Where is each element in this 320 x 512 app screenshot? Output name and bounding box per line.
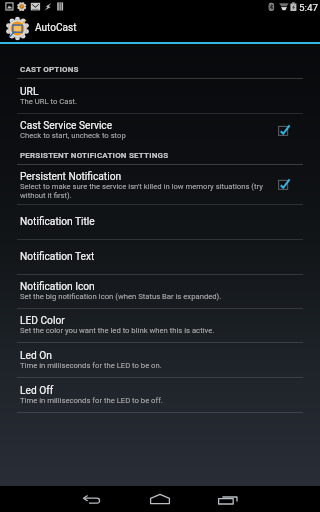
staticText: The URL to Cast.	[20, 97, 77, 106]
button[interactable]: Back	[75, 486, 109, 512]
button[interactable]: Notification Text	[0, 240, 320, 274]
staticText: Notification Text	[20, 251, 95, 263]
staticText: Set the big notification Icon (when Stat…	[20, 292, 222, 301]
staticText: Time in milliseconds for the LED to be o…	[20, 361, 162, 370]
button[interactable]: Notification Title	[0, 205, 320, 239]
button[interactable]: Home	[143, 486, 177, 512]
button[interactable]: Cast Service Service	[0, 114, 320, 147]
staticText: Time in milliseconds for the LED to be o…	[20, 396, 163, 405]
staticText: Check to start, uncheck to stop	[20, 131, 126, 140]
staticText: Select to make sure the service isn't ki…	[20, 182, 268, 200]
staticText: LED Color	[20, 315, 65, 327]
button[interactable]: Toggle	[278, 124, 292, 138]
staticText: Notification Title	[20, 216, 95, 228]
staticText: Persistent Notification	[20, 171, 122, 183]
button[interactable]: LED Color	[0, 309, 320, 342]
staticText: URL	[20, 86, 39, 98]
staticText: Set the color you want the led to blink …	[20, 326, 215, 335]
button[interactable]: AutoCast	[0, 14, 320, 42]
button[interactable]: Toggle	[278, 178, 292, 192]
button[interactable]: Led On	[0, 343, 320, 377]
button[interactable]: Notification Icon	[0, 275, 320, 308]
staticText: Notification Icon	[20, 281, 95, 293]
staticText: AutoCast	[35, 22, 77, 34]
staticText: CAST OPTIONS	[20, 65, 79, 74]
staticText: 5:47	[299, 2, 318, 13]
staticText: Cast Service Service	[20, 120, 113, 132]
staticText: Led On	[20, 350, 52, 362]
staticText: Led Off	[20, 385, 54, 397]
button[interactable]: URL	[0, 79, 320, 113]
button[interactable]: Recent apps	[211, 486, 245, 512]
button[interactable]: Led Off	[0, 378, 320, 412]
button[interactable]: Persistent Notification	[0, 165, 320, 204]
staticText: PERSISTENT NOTIFICATION SETTINGS	[20, 151, 169, 160]
